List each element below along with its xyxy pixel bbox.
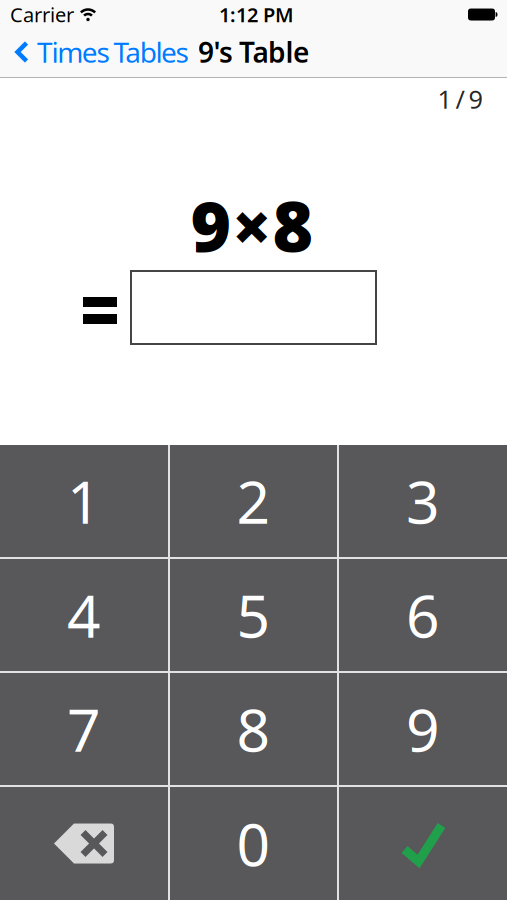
staticText: 7 (67, 690, 101, 768)
button[interactable]: Submit answer (339, 787, 507, 900)
staticText: 9's Table (198, 33, 309, 71)
button[interactable]: 0 (170, 787, 337, 900)
staticText: 4 (67, 576, 101, 654)
button[interactable]: 9 (339, 673, 507, 785)
button[interactable]: 5 (170, 559, 337, 671)
staticText: 0 (236, 804, 270, 882)
button[interactable]: Delete (0, 787, 168, 900)
button[interactable]: 4 (0, 559, 168, 671)
staticText: Times Tables (37, 33, 189, 71)
staticText: 1:12 PM (219, 1, 294, 28)
button[interactable]: 2 (170, 445, 337, 557)
button[interactable]: 6 (339, 559, 507, 671)
staticText: 3 (406, 462, 440, 540)
staticText: 2 (236, 462, 270, 540)
staticText: 6 (406, 576, 440, 654)
button[interactable]: 1 (0, 445, 168, 557)
button[interactable]: 8 (170, 673, 337, 785)
button[interactable]: 3 (339, 445, 507, 557)
button[interactable]: 7 (0, 673, 168, 785)
staticText: 1 / 9 (437, 82, 482, 116)
staticText: Carrier (10, 1, 74, 28)
staticText: 1 (67, 462, 101, 540)
staticText: 9 (406, 690, 440, 768)
staticText: 9×8 (190, 179, 313, 271)
button[interactable]: Times Tables (15, 33, 189, 71)
staticText: 5 (236, 576, 270, 654)
staticText: 8 (236, 690, 270, 768)
